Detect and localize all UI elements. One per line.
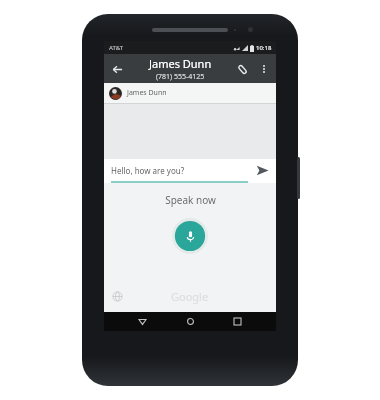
button[interactable]: Recent apps [228,312,247,331]
staticText: AT&T [109,44,124,52]
button[interactable]: Hello, how are you? [104,159,276,181]
button[interactable]: More options [254,59,274,79]
button[interactable]: Home [181,312,200,331]
staticText: James Dunn [149,56,212,71]
staticText: (781) 555-4125 [156,72,205,82]
staticText: Hello, how are you? [111,165,251,176]
staticText: Google [171,289,209,304]
button[interactable]: Back [133,312,152,331]
button[interactable]: Attach [230,57,254,81]
button[interactable]: Send [251,159,273,181]
button[interactable]: James Dunn [104,83,276,103]
button[interactable]: Change language [112,291,123,302]
staticText: Speak now [165,193,216,207]
staticText: 10:18 [256,44,272,52]
button[interactable]: Back [104,56,130,82]
button[interactable]: James Dunn [130,56,230,82]
button[interactable]: Microphone [172,218,208,254]
staticText: James Dunn [127,88,167,98]
